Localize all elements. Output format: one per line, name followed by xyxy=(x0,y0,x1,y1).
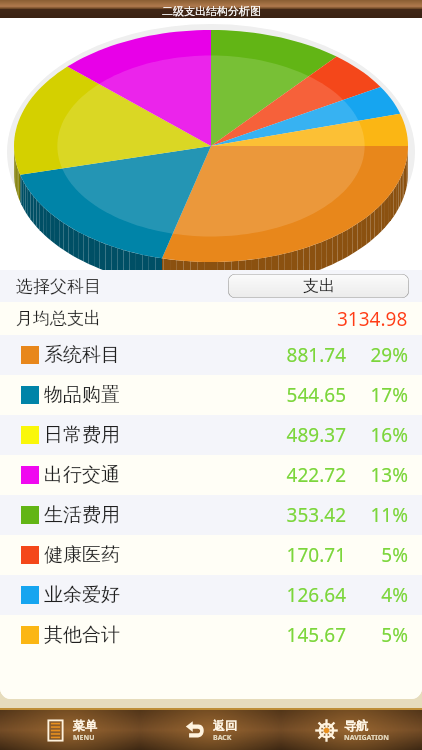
staticText: 系统科目 xyxy=(44,343,120,367)
staticText: 物品购置 xyxy=(44,383,120,407)
staticText: 5% xyxy=(346,542,408,568)
staticText: 二级支出结构分析图 xyxy=(162,4,261,18)
staticText: 881.74 xyxy=(250,342,346,368)
staticText: 其他合计 xyxy=(44,623,120,647)
button[interactable]: 业余爱好 xyxy=(0,575,422,615)
staticText: 业余爱好 xyxy=(44,583,120,607)
button[interactable]: Menu xyxy=(0,710,140,750)
button[interactable]: 月均总支出 xyxy=(0,302,422,335)
staticText: 126.64 xyxy=(250,582,346,608)
staticText: 5% xyxy=(346,622,408,648)
button[interactable]: 其他合计 xyxy=(0,615,422,655)
staticText: BACK xyxy=(213,733,232,743)
button[interactable]: 系统科目 xyxy=(0,335,422,375)
button[interactable]: 支出 xyxy=(228,274,409,298)
staticText: MENU xyxy=(73,733,95,743)
staticText: 选择父科目 xyxy=(16,276,101,297)
staticText: 月均总支出 xyxy=(16,308,101,329)
button[interactable]: 物品购置 xyxy=(0,375,422,415)
button[interactable]: 健康医药 xyxy=(0,535,422,575)
staticText: 544.65 xyxy=(250,382,346,408)
staticText: 145.67 xyxy=(250,622,346,648)
staticText: 日常费用 xyxy=(44,423,120,447)
button[interactable]: 日常费用 xyxy=(0,415,422,455)
button[interactable]: 选择父科目 xyxy=(0,270,422,302)
staticText: 16% xyxy=(346,422,408,448)
staticText: 3134.98 xyxy=(337,306,408,332)
staticText: 17% xyxy=(346,382,408,408)
button[interactable]: Navigation xyxy=(281,710,422,750)
staticText: 29% xyxy=(346,342,408,368)
button[interactable]: 出行交通 xyxy=(0,455,422,495)
staticText: NAVIGATION xyxy=(344,733,389,743)
button[interactable]: Back xyxy=(140,710,281,750)
staticText: 170.71 xyxy=(250,542,346,568)
staticText: 489.37 xyxy=(250,422,346,448)
staticText: 出行交通 xyxy=(44,463,120,487)
staticText: 健康医药 xyxy=(44,543,120,567)
staticText: 353.42 xyxy=(250,502,346,528)
staticText: 4% xyxy=(346,582,408,608)
staticText: 11% xyxy=(346,502,408,528)
button[interactable]: 生活费用 xyxy=(0,495,422,535)
staticText: 生活费用 xyxy=(44,503,120,527)
staticText: 422.72 xyxy=(250,462,346,488)
staticText: 支出 xyxy=(303,276,335,296)
staticText: 13% xyxy=(346,462,408,488)
staticText: 导航 xyxy=(344,718,368,733)
staticText: 返回 xyxy=(213,718,237,733)
staticText: 菜单 xyxy=(73,718,97,733)
